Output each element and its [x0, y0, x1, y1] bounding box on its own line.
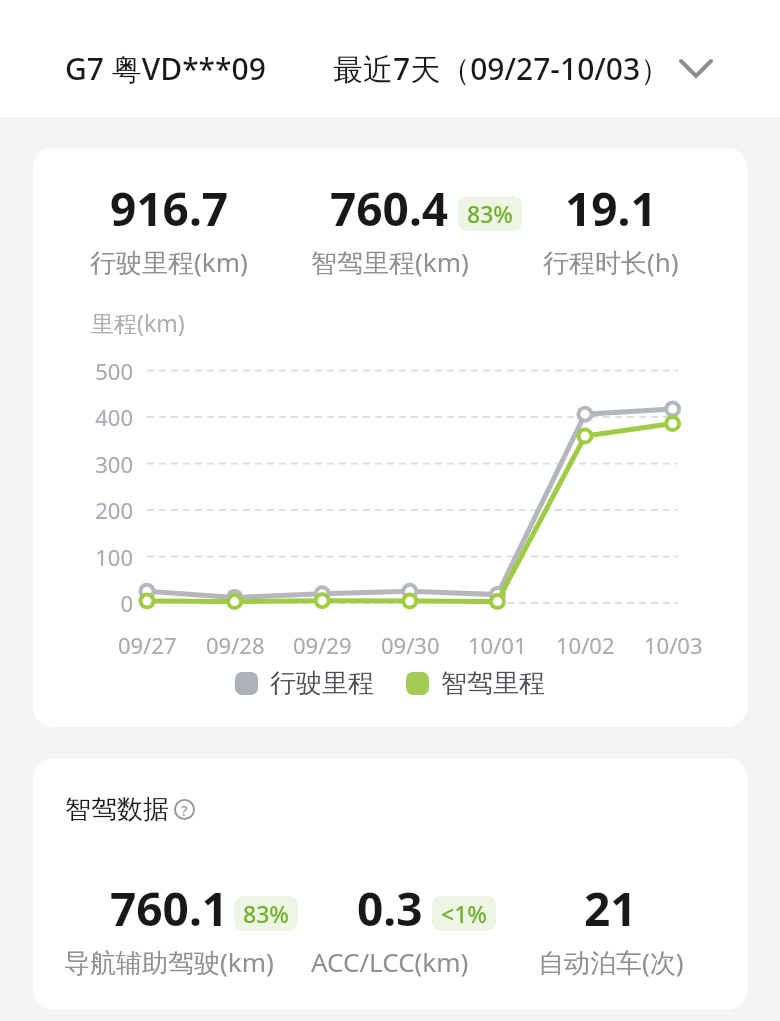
staticText: ?: [181, 800, 188, 820]
staticText: 0: [120, 588, 133, 618]
staticText: 09/29: [293, 630, 352, 660]
staticText: 916.7: [110, 177, 229, 240]
staticText: 里程(km): [91, 307, 185, 338]
staticText: 导航辅助驾驶(km): [64, 944, 274, 980]
staticText: 400: [95, 402, 133, 432]
staticText: 100: [95, 542, 133, 572]
staticText: 行驶里程: [270, 667, 374, 700]
button[interactable]: ?: [174, 799, 195, 820]
staticText: 19.1: [565, 177, 657, 240]
staticText: 09/30: [381, 630, 440, 660]
staticText: G7 粤VD***09: [65, 48, 266, 89]
staticText: 83%: [243, 898, 289, 929]
staticText: <1%: [441, 898, 487, 929]
staticText: 10/02: [556, 630, 615, 660]
staticText: 智驾里程(km): [311, 244, 469, 280]
staticText: 200: [95, 495, 133, 525]
staticText: 行程时长(h): [543, 244, 679, 280]
staticText: 09/28: [206, 630, 265, 660]
button[interactable]: 最近7天（09/27-10/03）: [333, 48, 711, 89]
staticText: 500: [95, 356, 133, 386]
staticText: 智驾数据: [65, 793, 169, 826]
staticText: 10/01: [468, 630, 527, 660]
staticText: 行驶里程(km): [90, 244, 248, 280]
staticText: 83%: [467, 198, 513, 229]
staticText: ACC/LCC(km): [311, 944, 469, 979]
staticText: 10/03: [644, 630, 703, 660]
staticText: 0.3: [357, 877, 423, 940]
staticText: 智驾里程: [441, 667, 545, 700]
staticText: 760.1: [110, 877, 229, 940]
staticText: 最近7天（09/27-10/03）: [333, 48, 671, 89]
staticText: 760.4: [330, 177, 449, 240]
staticText: 300: [95, 449, 133, 479]
staticText: 21: [584, 877, 637, 940]
staticText: 自动泊车(次): [538, 944, 684, 980]
staticText: 09/27: [118, 630, 177, 660]
